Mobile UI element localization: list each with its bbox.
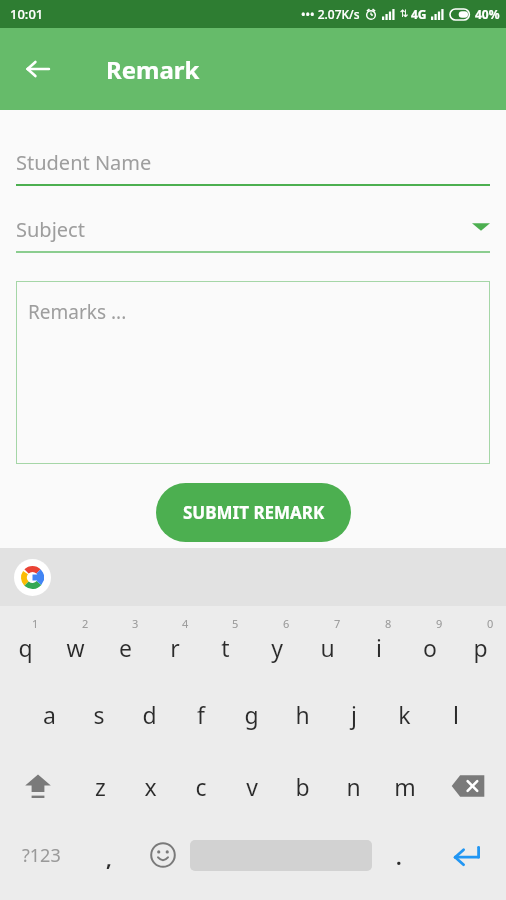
staticText: 0: [487, 616, 494, 631]
button[interactable]: SUBMIT REMARK: [156, 483, 351, 542]
staticText: r: [170, 632, 180, 663]
staticText: Student Name: [16, 149, 152, 176]
button[interactable]: h: [277, 678, 328, 750]
staticText: s: [93, 699, 105, 730]
button[interactable]: 8: [353, 606, 404, 678]
staticText: 7: [334, 616, 341, 631]
staticText: .: [396, 844, 402, 871]
button[interactable]: d: [124, 678, 175, 750]
staticText: 1: [32, 616, 39, 631]
staticText: 40%: [475, 6, 500, 22]
button[interactable]: f: [175, 678, 226, 750]
staticText: 3: [132, 616, 139, 631]
button[interactable]: 1: [0, 606, 50, 678]
staticText: a: [43, 699, 56, 730]
staticText: p: [473, 632, 488, 663]
button[interactable]: ,: [82, 822, 136, 888]
staticText: u: [320, 632, 335, 663]
staticText: h: [295, 699, 310, 730]
staticText: Subject: [16, 216, 85, 243]
button[interactable]: 5: [200, 606, 251, 678]
staticText: g: [244, 699, 259, 730]
staticText: w: [66, 632, 85, 663]
staticText: 9: [436, 616, 443, 631]
button[interactable]: Remarks ...: [16, 281, 490, 464]
button[interactable]: c: [175, 750, 226, 822]
button[interactable]: s: [74, 678, 124, 750]
button[interactable]: 3: [100, 606, 150, 678]
button[interactable]: v: [226, 750, 277, 822]
staticText: 4: [182, 616, 189, 631]
button[interactable]: z: [75, 750, 125, 822]
staticText: SUBMIT REMARK: [183, 501, 325, 524]
button[interactable]: Subject: [16, 205, 490, 253]
staticText: Remarks ...: [28, 299, 127, 325]
button[interactable]: Google: [14, 559, 51, 596]
staticText: f: [197, 699, 205, 730]
button[interactable]: 0: [455, 606, 506, 678]
button[interactable]: 2: [50, 606, 100, 678]
staticText: 4G: [411, 6, 427, 22]
button[interactable]: Emoji: [136, 822, 190, 888]
staticText: j: [351, 699, 357, 730]
button[interactable]: Enter: [426, 822, 506, 888]
button[interactable]: Space: [190, 822, 372, 888]
button[interactable]: 9: [404, 606, 455, 678]
staticText: d: [142, 699, 157, 730]
staticText: v: [246, 771, 258, 802]
staticText: x: [144, 771, 157, 802]
staticText: z: [95, 771, 106, 802]
button[interactable]: k: [379, 678, 430, 750]
button[interactable]: .: [372, 822, 426, 888]
staticText: l: [453, 699, 459, 730]
staticText: 5: [232, 616, 239, 631]
button[interactable]: g: [226, 678, 277, 750]
staticText: ••• 2.07K/s: [301, 6, 360, 22]
button[interactable]: 4: [150, 606, 200, 678]
staticText: 10:01: [10, 5, 44, 23]
button[interactable]: n: [328, 750, 379, 822]
staticText: q: [18, 632, 33, 663]
staticText: t: [221, 632, 230, 663]
button[interactable]: b: [277, 750, 328, 822]
button[interactable]: m: [379, 750, 430, 822]
staticText: y: [271, 632, 283, 663]
staticText: k: [398, 699, 411, 730]
staticText: b: [295, 771, 310, 802]
staticText: ?123: [22, 843, 61, 868]
button[interactable]: Shift: [0, 750, 75, 822]
staticText: c: [195, 771, 207, 802]
button[interactable]: l: [430, 678, 481, 750]
staticText: e: [119, 632, 132, 663]
staticText: i: [376, 632, 382, 663]
staticText: m: [394, 771, 416, 802]
staticText: o: [423, 632, 437, 663]
staticText: 8: [385, 616, 392, 631]
button[interactable]: ?123: [0, 822, 82, 888]
staticText: ,: [106, 845, 112, 872]
button[interactable]: 6: [251, 606, 302, 678]
button[interactable]: Backspace: [430, 750, 506, 822]
staticText: ⇅: [400, 8, 409, 20]
button[interactable]: a: [24, 678, 74, 750]
staticText: 6: [283, 616, 290, 631]
button[interactable]: j: [328, 678, 379, 750]
staticText: 2: [82, 616, 89, 631]
button[interactable]: Back: [16, 47, 60, 91]
button[interactable]: 7: [302, 606, 353, 678]
button[interactable]: Student Name: [16, 138, 490, 186]
button[interactable]: x: [125, 750, 175, 822]
staticText: n: [346, 771, 361, 802]
staticText: Remark: [106, 53, 200, 86]
